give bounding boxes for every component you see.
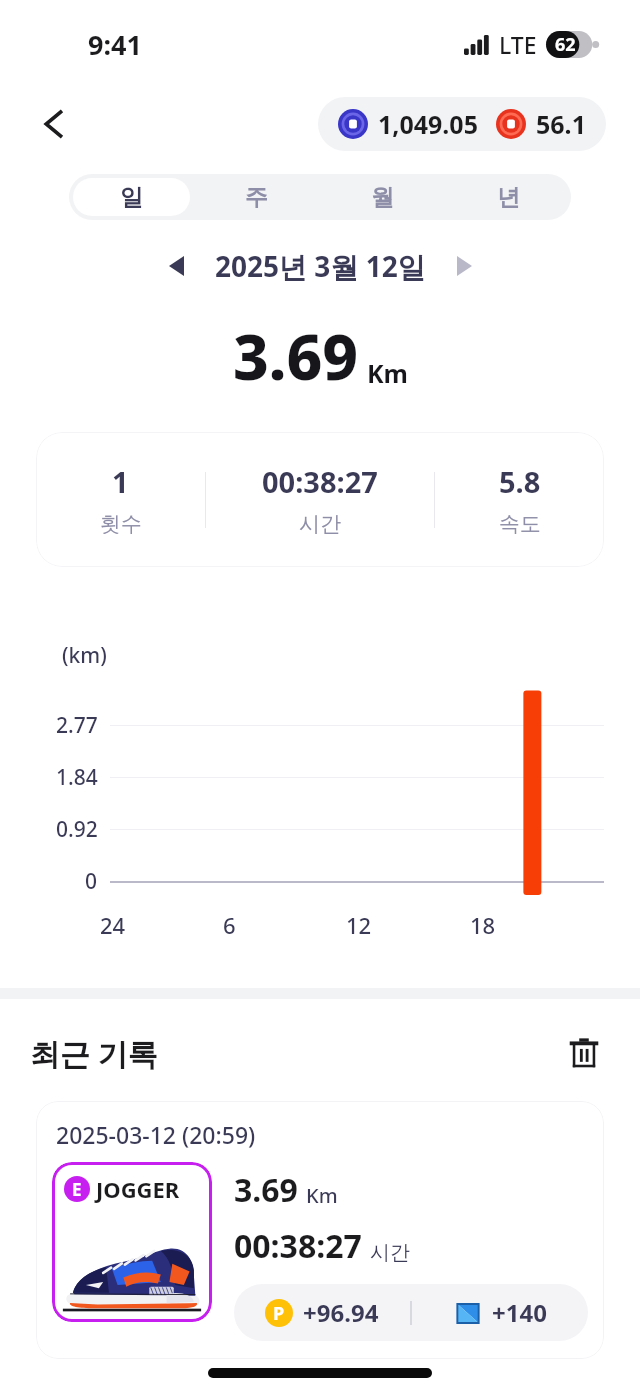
staticText: 9:41 <box>88 26 142 63</box>
staticText: 24 <box>100 910 126 940</box>
staticText: P <box>273 1301 285 1326</box>
staticText: 00:38:27 <box>262 462 378 501</box>
staticText: 6 <box>223 910 236 940</box>
staticText: 년 <box>497 183 520 212</box>
staticText: Km <box>306 1182 338 1209</box>
staticText: 62 <box>555 32 576 57</box>
button[interactable]: Back <box>26 96 82 152</box>
staticText: 2025년 3월 12일 <box>215 247 426 285</box>
staticText: 3.69 <box>233 314 359 398</box>
staticText: 3.69 <box>234 1168 298 1212</box>
staticText: 시간 <box>370 1240 410 1265</box>
staticText: 56.1 <box>536 107 586 141</box>
staticText: 일 <box>120 183 143 212</box>
staticText: 5.8 <box>499 462 541 501</box>
staticText: 12 <box>346 910 372 940</box>
staticText: +140 <box>492 1296 547 1329</box>
staticText: 2025-03-12 (20:59) <box>56 1119 256 1150</box>
button[interactable]: Previous day <box>155 244 199 288</box>
button[interactable]: P <box>234 1284 588 1341</box>
button[interactable]: Next day <box>442 244 486 288</box>
staticText: 속도 <box>499 511 541 537</box>
staticText: 0.92 <box>56 815 98 844</box>
staticText: 최근 기록 <box>30 1033 158 1074</box>
staticText: 월 <box>371 183 394 212</box>
staticText: 주 <box>245 183 268 212</box>
button[interactable]: 1 <box>36 432 604 567</box>
button[interactable]: 년 <box>449 178 567 216</box>
staticText: 횟수 <box>100 511 142 537</box>
staticText: +96.94 <box>303 1296 379 1329</box>
staticText: 2.77 <box>56 711 98 740</box>
staticText: JOGGER <box>96 1174 180 1204</box>
button[interactable]: Delete records <box>558 1027 610 1079</box>
staticText: LTE <box>499 29 537 60</box>
button[interactable]: 월 <box>323 178 441 216</box>
staticText: Km <box>367 356 408 390</box>
button[interactable]: 1,049.05 <box>318 97 606 151</box>
staticText: 18 <box>470 910 496 940</box>
staticText: 1 <box>112 462 129 501</box>
staticText: 시간 <box>299 511 341 537</box>
button[interactable]: 2025-03-12 (20:59) <box>36 1101 604 1359</box>
staticText: 00:38:27 <box>234 1224 362 1268</box>
button[interactable]: 일 <box>73 178 190 216</box>
staticText: 1.84 <box>56 763 98 792</box>
staticText: E <box>72 1178 82 1201</box>
staticText: 1,049.05 <box>378 107 478 141</box>
staticText: (km) <box>62 641 107 670</box>
button[interactable]: 주 <box>198 178 315 216</box>
staticText: 0 <box>85 867 98 896</box>
